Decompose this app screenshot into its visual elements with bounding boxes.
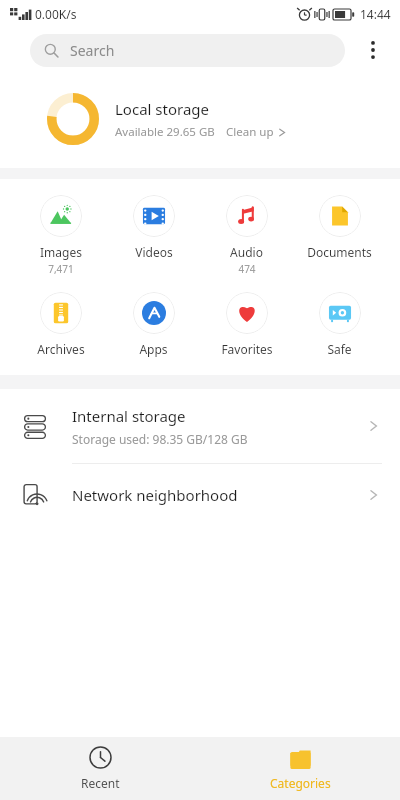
button[interactable]: Apps [107, 290, 200, 359]
staticText: Favorites [221, 341, 273, 357]
staticText: Images [40, 244, 82, 260]
staticText: Available 29.65 GB [115, 124, 215, 140]
button[interactable]: Images [14, 193, 107, 278]
button[interactable]: Safe [293, 290, 386, 359]
button[interactable]: More options [345, 28, 400, 72]
button[interactable]: Favorites [200, 290, 293, 359]
button[interactable]: Network neighborhood [0, 464, 400, 526]
staticText: Network neighborhood [72, 485, 369, 505]
staticText: Local storage [115, 99, 209, 119]
staticText: 7,471 [48, 262, 74, 276]
staticText: Apps [139, 341, 168, 357]
staticText: Recent [81, 775, 120, 791]
button[interactable]: Categories [200, 737, 400, 800]
staticText: Safe [327, 341, 352, 357]
staticText: Audio [230, 244, 263, 260]
staticText: 474 [238, 262, 256, 276]
button[interactable]: Local storage [0, 88, 400, 150]
staticText: Storage used: 98.35 GB/128 GB [72, 431, 248, 447]
button[interactable]: Documents [293, 193, 386, 262]
staticText: Videos [135, 244, 173, 260]
staticText: Categories [270, 775, 331, 791]
button[interactable]: Audio [200, 193, 293, 278]
button[interactable]: Archives [14, 290, 107, 359]
staticText: Documents [307, 244, 372, 260]
staticText: 14:44 [360, 6, 391, 22]
staticText: Archives [37, 341, 85, 357]
button[interactable]: Internal storage [0, 389, 400, 463]
staticText: Internal storage [72, 406, 186, 426]
button[interactable]: Videos [107, 193, 200, 262]
button[interactable]: Recent [0, 737, 200, 800]
staticText: Search [70, 41, 115, 60]
staticText: Clean up [226, 124, 274, 140]
staticText: 0.00K/s [35, 6, 77, 22]
button[interactable]: Search [30, 34, 345, 67]
